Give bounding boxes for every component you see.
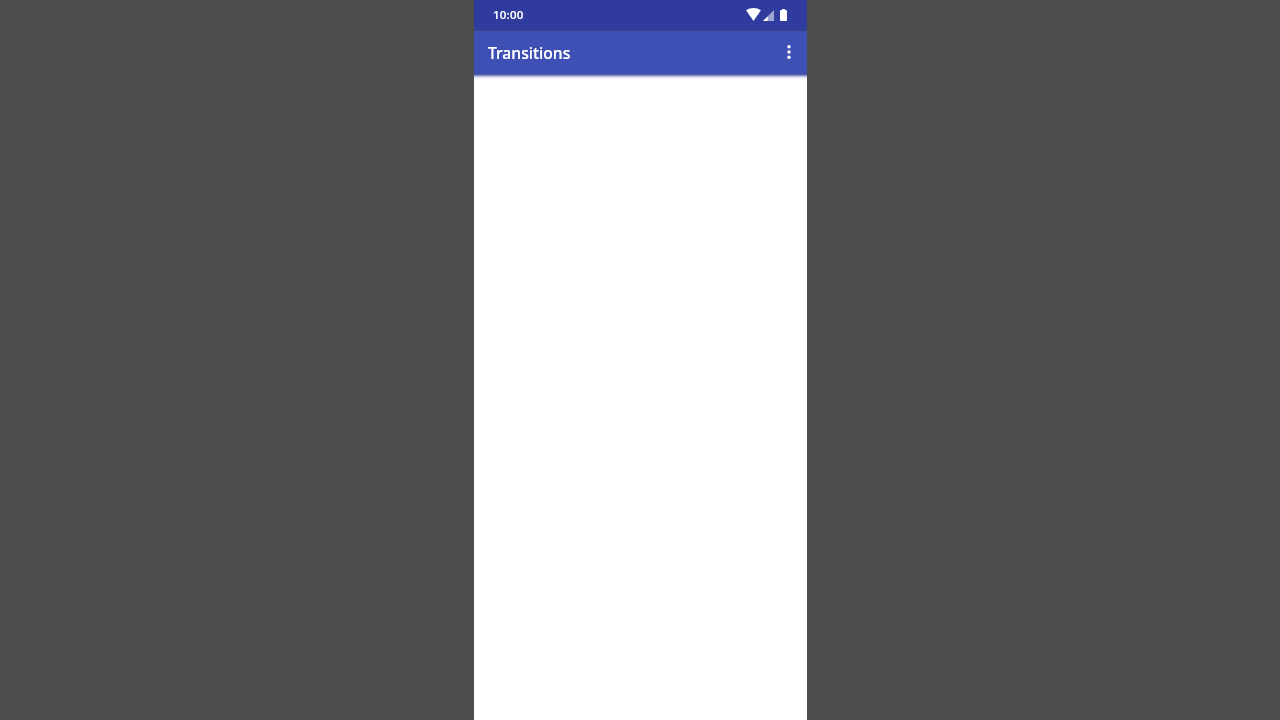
button[interactable]: Transitions <box>488 42 571 63</box>
staticText: Transitions <box>488 42 571 63</box>
button[interactable] <box>767 29 807 74</box>
staticText: 10:00 <box>493 7 524 23</box>
